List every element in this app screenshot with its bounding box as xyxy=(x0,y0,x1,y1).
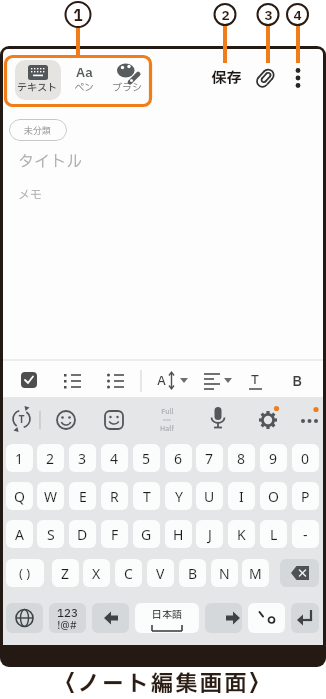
button[interactable]: N xyxy=(211,559,238,587)
button[interactable]: U xyxy=(196,482,223,510)
button[interactable]: L xyxy=(260,520,287,548)
button[interactable]: V xyxy=(147,559,174,587)
staticText: I xyxy=(239,487,244,506)
staticText: Y xyxy=(175,487,183,506)
staticText: B xyxy=(292,371,302,389)
staticText: O xyxy=(268,487,279,506)
button[interactable] xyxy=(280,559,319,587)
button[interactable]: I xyxy=(228,482,255,510)
staticText: T xyxy=(251,370,259,388)
staticText: 3 xyxy=(78,449,87,468)
staticText: 6 xyxy=(174,449,183,468)
staticText: G xyxy=(141,525,152,544)
button[interactable]: 5 xyxy=(133,444,160,472)
button[interactable]: D xyxy=(69,520,96,548)
button[interactable]: 6 xyxy=(165,444,192,472)
staticText: タイトル xyxy=(18,150,83,174)
staticText: 0 xyxy=(301,449,310,468)
button[interactable]: P xyxy=(292,482,319,510)
staticText: 123 xyxy=(57,605,78,617)
button[interactable]: O xyxy=(260,482,287,510)
button[interactable] xyxy=(6,603,43,633)
staticText: D xyxy=(77,525,88,544)
staticText: Half xyxy=(160,424,174,433)
staticText: J xyxy=(208,525,212,544)
button[interactable]: 未分類 xyxy=(9,119,67,141)
button[interactable]: F xyxy=(101,520,128,548)
staticText: N xyxy=(219,564,230,583)
staticText: 2 xyxy=(46,449,55,468)
button[interactable]: 2 xyxy=(37,444,64,472)
staticText: !@# xyxy=(57,618,77,630)
staticText: A xyxy=(15,525,24,544)
button[interactable]: K xyxy=(228,520,255,548)
staticText: T xyxy=(143,487,151,506)
button[interactable]: C xyxy=(115,559,142,587)
staticText: 1 xyxy=(15,449,24,468)
button[interactable]: B xyxy=(179,559,206,587)
staticText: 5 xyxy=(142,449,151,468)
button[interactable]: 8 xyxy=(228,444,255,472)
staticText: U xyxy=(204,487,215,506)
staticText: 9 xyxy=(269,449,278,468)
staticText: ペン xyxy=(74,80,94,95)
staticText: M xyxy=(249,564,262,583)
button[interactable]: S xyxy=(37,520,64,548)
staticText: 4 xyxy=(110,449,119,468)
button[interactable]: 4 xyxy=(101,444,128,472)
staticText: Full xyxy=(161,407,174,416)
button[interactable] xyxy=(205,603,242,633)
button[interactable]: M xyxy=(242,559,269,587)
button[interactable]: Y xyxy=(165,482,192,510)
staticText: テキスト xyxy=(17,80,57,95)
button[interactable]: W xyxy=(37,482,64,510)
button[interactable] xyxy=(248,603,285,633)
staticText: B xyxy=(188,564,198,583)
staticText: R xyxy=(110,487,119,506)
staticText: L xyxy=(270,525,278,544)
staticText: 7 xyxy=(205,449,214,468)
staticText: W xyxy=(44,487,58,506)
button[interactable] xyxy=(135,603,199,633)
staticText: 3 xyxy=(264,6,273,25)
button[interactable]: 7 xyxy=(196,444,223,472)
staticText: 〈ノート編集画面〉 xyxy=(53,668,274,697)
staticText: A xyxy=(157,371,166,389)
button[interactable] xyxy=(49,603,86,633)
button[interactable]: J xyxy=(196,520,223,548)
staticText: ブラシ xyxy=(112,80,142,95)
button[interactable]: 9 xyxy=(260,444,287,472)
button[interactable]: ( ) xyxy=(6,559,44,587)
staticText: X xyxy=(92,564,101,583)
button[interactable] xyxy=(291,603,319,633)
staticText: Q xyxy=(14,487,25,506)
staticText: ( ) xyxy=(19,564,31,582)
button[interactable]: X xyxy=(83,559,110,587)
button[interactable]: E xyxy=(69,482,96,510)
staticText: Z xyxy=(61,564,70,583)
staticText: 2 xyxy=(221,6,230,25)
button[interactable]: Z xyxy=(52,559,79,587)
staticText: 8 xyxy=(237,449,246,468)
staticText: メモ xyxy=(18,186,43,204)
staticText: T xyxy=(18,412,25,426)
button[interactable]: T xyxy=(133,482,160,510)
button[interactable] xyxy=(15,60,61,100)
button[interactable]: 3 xyxy=(69,444,96,472)
button[interactable]: H xyxy=(165,520,192,548)
staticText: K xyxy=(237,525,246,544)
button[interactable]: Q xyxy=(6,482,33,510)
staticText: V xyxy=(156,564,165,583)
staticText: S xyxy=(47,525,55,544)
staticText: Aa xyxy=(76,63,93,82)
button[interactable]: G xyxy=(133,520,160,548)
button[interactable]: 1 xyxy=(6,444,33,472)
staticText: P xyxy=(301,487,310,506)
button[interactable]: R xyxy=(101,482,128,510)
button[interactable]: - xyxy=(292,520,319,548)
button[interactable]: 0 xyxy=(292,444,319,472)
button[interactable] xyxy=(92,603,129,633)
button[interactable]: A xyxy=(6,520,33,548)
